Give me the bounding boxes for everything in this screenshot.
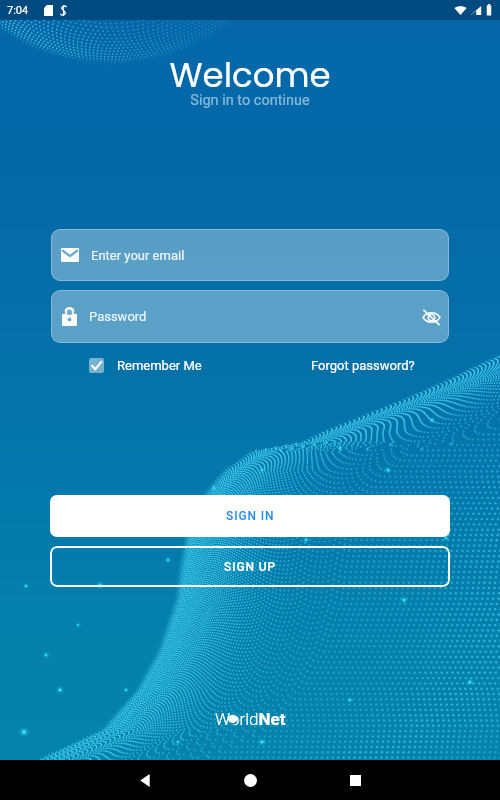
- button[interactable]: Home: [230, 760, 270, 800]
- staticText: SIGN IN: [226, 509, 275, 523]
- button[interactable]: Back: [125, 760, 165, 800]
- button[interactable]: Enter your email: [51, 229, 449, 281]
- staticText: WorldNet: [215, 709, 286, 729]
- staticText: Remember Me: [117, 358, 202, 373]
- staticText: Sign in to continue: [0, 92, 500, 109]
- staticText: SIGN UP: [224, 560, 277, 574]
- button[interactable]: Password: [51, 290, 449, 343]
- button[interactable]: Forgot password?: [311, 358, 415, 373]
- button[interactable]: Remember Me: [89, 358, 202, 373]
- staticText: Enter your email: [91, 248, 185, 263]
- staticText: Welcome: [0, 51, 500, 99]
- staticText: Password: [89, 309, 418, 324]
- button[interactable]: SIGN IN: [50, 495, 450, 537]
- staticText: Forgot password?: [311, 358, 415, 373]
- staticText: 7:04: [7, 4, 29, 17]
- button[interactable]: Show password: [418, 304, 444, 330]
- button[interactable]: SIGN UP: [50, 546, 450, 587]
- button[interactable]: Recents: [335, 760, 375, 800]
